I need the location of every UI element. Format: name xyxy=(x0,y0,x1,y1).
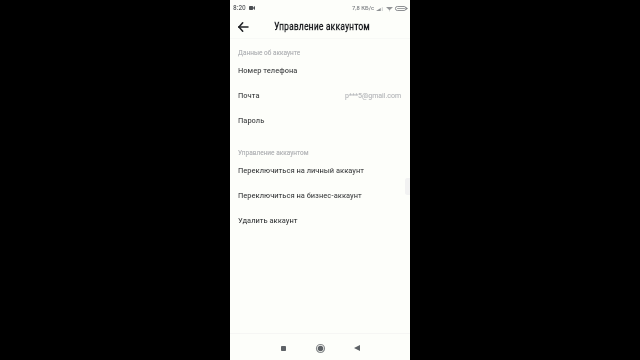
staticText: Данные об аккаунте xyxy=(238,49,301,57)
staticText: 8:20 xyxy=(233,4,246,12)
button[interactable]: Удалить аккаунт xyxy=(230,208,410,233)
button[interactable]: Back xyxy=(348,339,366,357)
staticText: Управление аккаунтом xyxy=(238,149,309,157)
staticText: Почта xyxy=(238,91,260,100)
staticText: Номер телефона xyxy=(238,66,298,75)
button[interactable]: Пароль xyxy=(230,108,410,133)
staticText: 7,8 КБ/с xyxy=(352,5,375,12)
button[interactable]: Номер телефона xyxy=(230,58,410,83)
staticText: Пароль xyxy=(238,116,265,125)
staticText: Удалить аккаунт xyxy=(238,216,298,225)
button[interactable]: Переключиться на личный аккаунт xyxy=(230,158,410,183)
staticText: Переключиться на личный аккаунт xyxy=(238,166,364,175)
button[interactable]: Recent apps xyxy=(274,339,292,357)
button[interactable]: Home xyxy=(311,339,329,357)
button[interactable]: Переключиться на бизнес-аккаунт xyxy=(230,183,410,208)
button[interactable]: Почта xyxy=(230,83,410,108)
staticText: Переключиться на бизнес-аккаунт xyxy=(238,191,362,200)
staticText: Управление аккаунтом xyxy=(274,21,370,33)
staticText: p***5@gmail.com xyxy=(345,92,402,100)
button[interactable]: Back xyxy=(234,18,252,36)
